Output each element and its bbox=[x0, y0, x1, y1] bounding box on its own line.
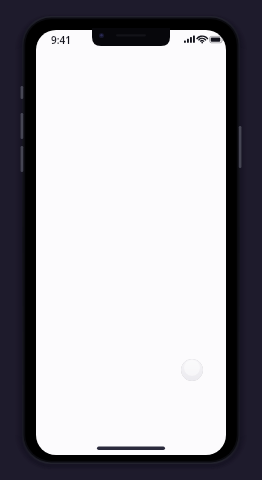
staticText: 9:41 bbox=[51, 33, 71, 47]
button[interactable]: Action button bbox=[181, 359, 203, 381]
